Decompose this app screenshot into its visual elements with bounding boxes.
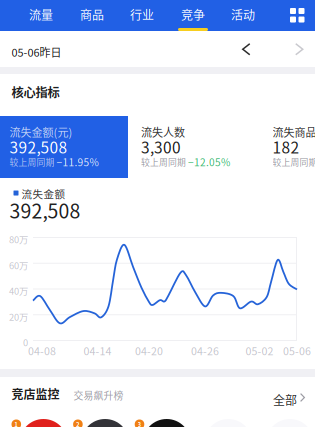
- staticText: 核心指标: [11, 83, 59, 101]
- staticText: 04-14: [83, 343, 111, 358]
- staticText: 3: [137, 420, 141, 427]
- staticText: 流量: [29, 6, 53, 23]
- staticText: 竞店监控: [11, 385, 59, 402]
- staticText: 较上周同期: [9, 155, 54, 168]
- button[interactable]: 行业: [118, 0, 166, 31]
- staticText: 80万: [9, 232, 28, 246]
- button[interactable]: All sections: [281, 0, 314, 31]
- staticText: 04-08: [28, 343, 56, 358]
- button[interactable]: 流失人数: [131, 116, 259, 178]
- staticText: 392,508: [9, 196, 80, 224]
- staticText: 3,300: [141, 135, 181, 158]
- button[interactable]: Next day: [283, 31, 315, 67]
- button[interactable]: 活动: [219, 0, 267, 31]
- button[interactable]: 流失金额(元): [0, 116, 128, 178]
- staticText: 05-06昨日: [11, 44, 61, 60]
- staticText: 商品: [80, 6, 104, 23]
- staticText: 流失商品数: [272, 124, 315, 140]
- staticText: 1: [14, 420, 18, 427]
- staticText: 活动: [231, 6, 255, 23]
- staticText: −12.05%: [188, 154, 230, 169]
- button[interactable]: Previous day: [231, 31, 263, 67]
- button[interactable]: Rank 3 competitor: [135, 418, 191, 427]
- button[interactable]: 流量: [17, 0, 65, 31]
- staticText: 行业: [130, 6, 154, 23]
- staticText: 流失人数: [141, 124, 185, 140]
- staticText: −11.95%: [56, 154, 98, 169]
- staticText: 2: [76, 420, 80, 427]
- button[interactable]: Rank 2 competitor: [73, 418, 129, 427]
- button[interactable]: 全部: [273, 388, 315, 410]
- staticText: 全部: [273, 391, 297, 408]
- button[interactable]: 流失商品数: [263, 116, 315, 178]
- staticText: 较上周同期: [141, 155, 186, 168]
- staticText: 05-06: [283, 343, 311, 358]
- staticText: 较上周同期: [272, 155, 315, 168]
- staticText: 竞争: [181, 6, 205, 23]
- staticText: 04-20: [135, 343, 163, 358]
- staticText: 04-26: [191, 343, 219, 358]
- staticText: 05-02: [245, 343, 273, 358]
- staticText: 20万: [9, 310, 28, 323]
- button[interactable]: 商品: [68, 0, 116, 31]
- staticText: 0: [23, 335, 28, 349]
- button[interactable]: Rank 1 competitor: [11, 418, 67, 427]
- staticText: 交易飙升榜: [73, 388, 123, 402]
- staticText: 40万: [9, 284, 28, 297]
- staticText: 392,508: [9, 135, 67, 158]
- staticText: 流失金额: [21, 186, 65, 201]
- staticText: 流失金额(元): [9, 124, 72, 140]
- button[interactable]: 竞争: [169, 0, 217, 31]
- staticText: 60万: [9, 258, 28, 272]
- staticText: 182: [272, 135, 299, 158]
